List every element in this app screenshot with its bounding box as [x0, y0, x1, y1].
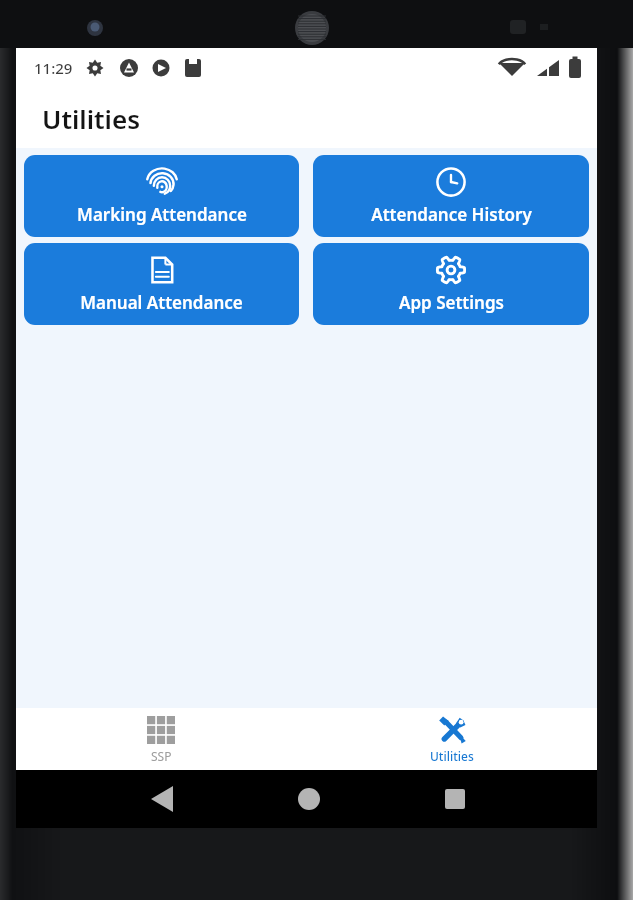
staticText: App Settings — [399, 291, 504, 314]
staticText: SSP — [151, 748, 172, 764]
button[interactable]: Manual Attendance — [24, 243, 299, 325]
button[interactable]: SSP — [16, 708, 306, 770]
button[interactable]: Marking Attendance — [24, 155, 299, 237]
staticText: Marking Attendance — [77, 203, 247, 226]
staticText: Attendance History — [371, 203, 532, 226]
staticText: 11:29 — [34, 58, 73, 78]
button[interactable]: App Settings — [313, 243, 589, 325]
button[interactable]: Attendance History — [313, 155, 589, 237]
staticText: Manual Attendance — [80, 291, 243, 314]
staticText: Utilities — [42, 101, 140, 136]
button[interactable]: Utilities — [306, 708, 597, 770]
staticText: Utilities — [430, 748, 474, 764]
